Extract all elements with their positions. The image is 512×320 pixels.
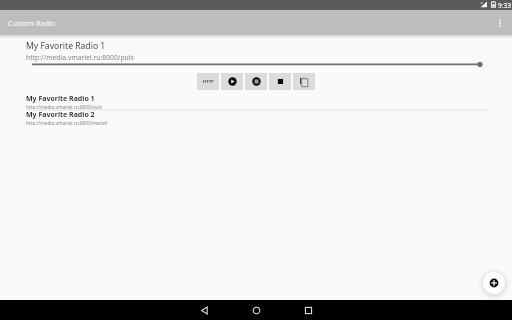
button[interactable]: Recents (283, 300, 333, 320)
button[interactable]: Copy (293, 73, 315, 90)
button[interactable]: More options (488, 10, 512, 35)
button[interactable]: Home (231, 300, 281, 320)
staticText: HTTP (203, 79, 214, 85)
button[interactable]: Back (179, 300, 229, 320)
button[interactable]: Open stream (197, 73, 219, 90)
button[interactable]: Play (221, 73, 243, 90)
staticText: http://media.vmariel.ru:8000/puls (26, 53, 134, 62)
staticText: 9:33 (498, 1, 512, 10)
button[interactable]: Pause (245, 73, 267, 90)
button[interactable]: My Favorite Radio 1 (26, 40, 486, 62)
staticText: Custom Radio (8, 18, 56, 28)
button[interactable]: My Favorite Radio 1 (0, 93, 512, 109)
button[interactable]: Stop (269, 73, 291, 90)
staticText: http://media.vmariel.ru:8000/mariel (26, 120, 107, 125)
button[interactable]: Add (483, 272, 505, 294)
staticText: My Favorite Radio 2 (26, 110, 95, 120)
staticText: http://media.vmariel.ru:8000/puls (26, 104, 103, 109)
staticText: My Favorite Radio 1 (26, 40, 106, 52)
button[interactable]: My Favorite Radio 2 (0, 109, 512, 125)
staticText: My Favorite Radio 1 (26, 94, 95, 104)
